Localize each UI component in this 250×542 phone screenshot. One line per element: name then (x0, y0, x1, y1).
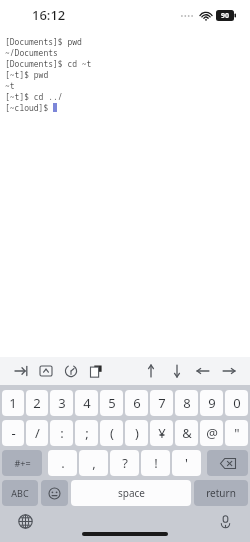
button[interactable]: ABC (2, 480, 38, 506)
button[interactable]: Backspace (207, 450, 248, 476)
staticText: 8 (183, 394, 191, 412)
button[interactable]: 2 (26, 390, 48, 416)
staticText: @ (206, 424, 218, 442)
button[interactable]: - (2, 420, 24, 446)
button[interactable]: Voice input (214, 510, 236, 532)
staticText: 2 (33, 394, 41, 412)
staticText: space (118, 486, 145, 500)
button[interactable]: 3 (50, 390, 73, 416)
staticText: [Documents]$ cd ~t (5, 58, 92, 69)
staticText: . (61, 454, 65, 472)
staticText: 1 (9, 394, 17, 412)
button[interactable]: ( (100, 420, 123, 446)
button[interactable]: ; (75, 420, 98, 446)
button[interactable]: 0 (225, 390, 248, 416)
button[interactable]: Change keyboard (14, 510, 36, 532)
button[interactable]: 6 (125, 390, 148, 416)
staticText: 5 (108, 394, 116, 412)
staticText: ( (110, 424, 114, 442)
staticText: & (182, 424, 192, 442)
button[interactable]: 8 (175, 390, 198, 416)
button[interactable]: / (26, 420, 48, 446)
button[interactable]: 7 (150, 390, 173, 416)
staticText: - (11, 424, 16, 442)
staticText: ' (185, 454, 188, 472)
button[interactable]: Left (192, 360, 214, 382)
staticText: return (206, 486, 236, 500)
button[interactable]: 4 (75, 390, 98, 416)
staticText: " (234, 424, 240, 442)
staticText: 0 (233, 394, 241, 412)
staticText: ¥ (158, 424, 166, 442)
button[interactable]: , (79, 450, 108, 476)
staticText: #+= (14, 457, 31, 469)
staticText: ? (122, 454, 128, 472)
staticText: [~t]$ pwd (5, 69, 49, 80)
button[interactable]: ) (125, 420, 148, 446)
staticText: ! (154, 454, 158, 472)
staticText: [~cloud]$ (5, 102, 53, 113)
staticText: / (35, 424, 40, 442)
button[interactable]: ? (110, 450, 139, 476)
button[interactable]: History (60, 360, 82, 382)
button[interactable]: Up (140, 360, 162, 382)
staticText: 9 (208, 394, 216, 412)
staticText: ) (135, 424, 139, 442)
button[interactable]: #+= (2, 450, 42, 476)
staticText: 90 (221, 11, 230, 21)
button[interactable]: space (71, 480, 191, 506)
button[interactable]: ! (141, 450, 170, 476)
staticText: ~t (5, 80, 15, 91)
staticText: ABC (11, 487, 29, 499)
button[interactable]: Down (166, 360, 188, 382)
staticText: 16:12 (32, 6, 66, 24)
staticText: 4 (83, 394, 91, 412)
button[interactable]: : (50, 420, 73, 446)
button[interactable]: ¥ (150, 420, 173, 446)
button[interactable]: 1 (2, 390, 24, 416)
button[interactable]: & (175, 420, 198, 446)
button[interactable]: Paste (85, 360, 107, 382)
button[interactable]: Emoji (41, 480, 68, 506)
button[interactable]: 9 (200, 390, 223, 416)
button[interactable]: Right (218, 360, 240, 382)
button[interactable]: @ (200, 420, 223, 446)
staticText: [~t]$ cd ../ (5, 91, 63, 102)
button[interactable]: Tab (10, 360, 32, 382)
button[interactable]: " (225, 420, 248, 446)
staticText: 3 (58, 394, 66, 412)
button[interactable]: ' (172, 450, 201, 476)
staticText: ; (85, 424, 89, 442)
staticText: ~/Documents (5, 47, 58, 58)
staticText: 6 (133, 394, 141, 412)
staticText: [Documents]$ pwd (5, 36, 82, 47)
button[interactable]: Control (35, 360, 57, 382)
button[interactable]: return (194, 480, 248, 506)
staticText: 7 (158, 394, 166, 412)
button[interactable]: 5 (100, 390, 123, 416)
staticText: : (60, 424, 64, 442)
staticText: , (92, 454, 96, 472)
button[interactable]: . (48, 450, 77, 476)
